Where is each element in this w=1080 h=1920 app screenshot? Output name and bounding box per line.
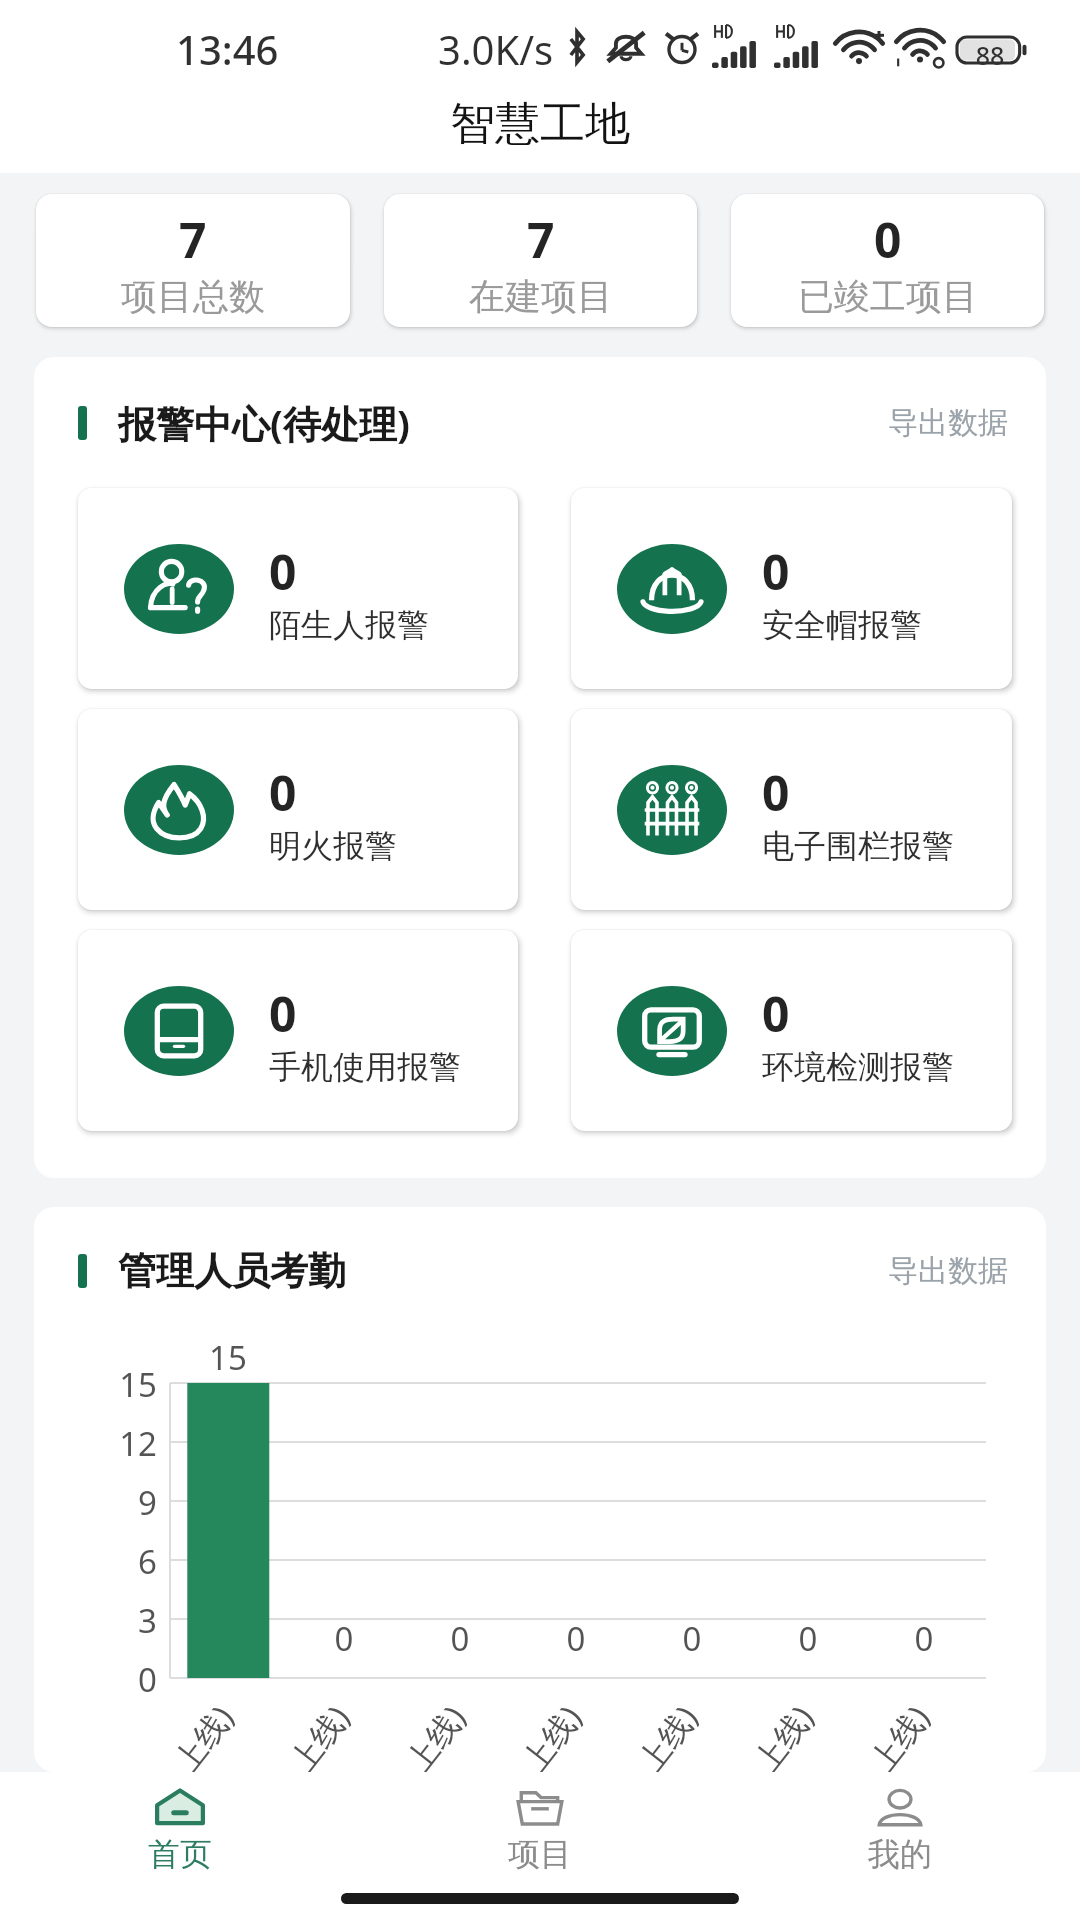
staticText: 手机使用报警 [269, 1047, 461, 1087]
staticText: 0 [518, 1616, 634, 1661]
button[interactable]: 7 [36, 194, 350, 327]
staticText: 已竣工项目 [798, 274, 978, 319]
staticText: 上线) [859, 1696, 939, 1772]
staticText: 0 [866, 1616, 982, 1661]
staticText: 9 [77, 1480, 157, 1525]
staticText: 13:46 [176, 22, 279, 76]
staticText: 项目 [508, 1834, 572, 1874]
staticText: 上线) [395, 1696, 475, 1772]
staticText: 项目总数 [121, 274, 265, 319]
staticText: 首页 [148, 1834, 212, 1874]
staticText: 0 [634, 1616, 750, 1661]
staticText: 管理人员考勤 [118, 1247, 346, 1295]
staticText: 报警中心(待处理) [118, 397, 410, 449]
staticText: 0 [269, 760, 297, 825]
staticText: 智慧工地 [450, 96, 630, 153]
button[interactable]: 0 [78, 709, 518, 910]
staticText: 0 [269, 539, 297, 604]
button[interactable]: 导出数据 [884, 400, 1012, 446]
staticText: 安全帽报警 [762, 605, 922, 645]
staticText: 12 [77, 1421, 157, 1466]
staticText: 0 [762, 760, 790, 825]
button[interactable]: Projects [360, 1772, 720, 1892]
button[interactable]: Profile [720, 1772, 1080, 1892]
button[interactable]: 0 [78, 930, 518, 1131]
staticText: 15 [77, 1362, 157, 1407]
staticText: 0 [402, 1616, 518, 1661]
staticText: 我的 [868, 1834, 932, 1874]
button[interactable]: Home [0, 1772, 360, 1892]
button[interactable]: 0 [571, 709, 1012, 910]
staticText: 上线) [163, 1696, 243, 1772]
staticText: 3.0K/s [438, 22, 554, 76]
staticText: 0 [77, 1657, 157, 1702]
staticText: 0 [286, 1616, 402, 1661]
staticText: 0 [762, 981, 790, 1046]
staticText: 7 [527, 207, 555, 272]
staticText: 7 [179, 207, 207, 272]
staticText: 15 [170, 1335, 286, 1380]
staticText: 0 [750, 1616, 866, 1661]
button[interactable]: 0 [78, 488, 518, 689]
staticText: 3 [77, 1598, 157, 1643]
staticText: 上线) [627, 1696, 707, 1772]
staticText: 上线) [743, 1696, 823, 1772]
staticText: 导出数据 [888, 404, 1008, 442]
staticText: 上线) [511, 1696, 591, 1772]
staticText: 环境检测报警 [762, 1047, 954, 1087]
staticText: 明火报警 [269, 826, 397, 866]
staticText: 陌生人报警 [269, 605, 429, 645]
staticText: 0 [874, 207, 902, 272]
staticText: 电子围栏报警 [762, 826, 954, 866]
staticText: 上线) [279, 1696, 359, 1772]
staticText: 0 [762, 539, 790, 604]
staticText: 0 [269, 981, 297, 1046]
staticText: 导出数据 [888, 1252, 1008, 1290]
button[interactable]: 7 [384, 194, 697, 327]
button[interactable]: 0 [571, 488, 1012, 689]
button[interactable]: 0 [571, 930, 1012, 1131]
button[interactable]: 0 [731, 194, 1044, 327]
staticText: 88 [971, 38, 1009, 72]
button[interactable]: 导出数据 [884, 1248, 1012, 1294]
staticText: 在建项目 [469, 274, 613, 319]
staticText: 6 [77, 1539, 157, 1584]
